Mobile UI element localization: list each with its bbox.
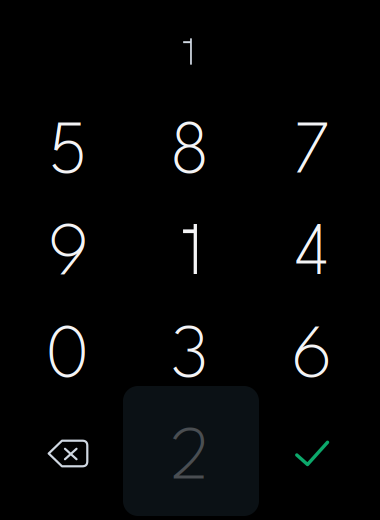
staticText: 0 [46,324,89,393]
button[interactable]: 6 [251,298,373,400]
staticText: 4 [294,222,329,291]
button[interactable]: 9 [7,196,129,298]
button[interactable] [129,196,251,298]
staticText: 2 [170,426,209,495]
button[interactable]: 3 [129,298,251,400]
staticText: 6 [292,324,332,393]
staticText: 9 [48,222,88,291]
button[interactable]: 2 [129,400,251,502]
button[interactable]: Delete [7,400,129,502]
button[interactable]: 8 [129,94,251,196]
staticText: 5 [48,120,87,189]
button[interactable]: 7 [251,94,373,196]
staticText: 7 [293,120,331,189]
staticText: 3 [171,324,209,393]
button[interactable]: Confirm [251,400,373,502]
staticText: 8 [170,120,210,189]
button[interactable]: 4 [251,196,373,298]
button[interactable]: 5 [7,94,129,196]
button[interactable]: 0 [7,298,129,400]
